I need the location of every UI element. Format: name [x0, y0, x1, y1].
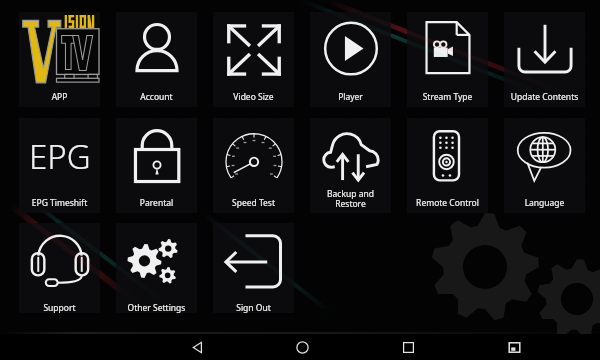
staticText: Remote Control	[409, 197, 486, 209]
staticText: Sign Out	[215, 302, 292, 313]
staticText: Update Contents	[506, 91, 583, 103]
button[interactable]: Sign Out	[213, 223, 294, 313]
button[interactable]: Player	[310, 12, 391, 107]
staticText: Support	[21, 302, 98, 313]
staticText: Backup and Restore	[312, 188, 389, 209]
button[interactable]: Home	[289, 334, 315, 360]
staticText: Stream Type	[409, 91, 486, 103]
button[interactable]: Recents	[395, 334, 421, 360]
button[interactable]: EPG	[19, 118, 100, 213]
staticText: Parental	[118, 197, 195, 209]
staticText: Account	[118, 91, 195, 103]
button[interactable]: APP	[19, 12, 100, 107]
button[interactable]: Stream Type	[407, 12, 488, 107]
staticText: Speed Test	[215, 197, 292, 209]
button[interactable]: Parental	[116, 118, 197, 213]
button[interactable]: Remote Control	[407, 118, 488, 213]
staticText: APP	[21, 91, 98, 103]
button[interactable]: Update Contents	[504, 12, 585, 107]
staticText: EPG Timeshift	[21, 197, 98, 209]
button[interactable]: Back	[184, 334, 210, 360]
button[interactable]: Other Settings	[116, 223, 197, 313]
button[interactable]: Screenshot	[501, 334, 527, 360]
button[interactable]: Language	[504, 118, 585, 213]
staticText: Video Size	[215, 91, 292, 103]
button[interactable]: Speed Test	[213, 118, 294, 213]
button[interactable]: Account	[116, 12, 197, 107]
staticText: Other Settings	[118, 302, 195, 313]
button[interactable]: Support	[19, 223, 100, 313]
staticText: Language	[506, 197, 583, 209]
button[interactable]: Video Size	[213, 12, 294, 107]
staticText: EPG	[29, 134, 91, 179]
staticText: Player	[312, 91, 389, 103]
button[interactable]: Backup and Restore	[310, 118, 391, 213]
